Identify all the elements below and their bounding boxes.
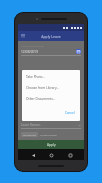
button[interactable]: Recent apps	[66, 151, 74, 159]
staticText: Leave Reason	[21, 123, 41, 127]
staticText: Apply	[47, 143, 56, 147]
button[interactable]: Pick date	[76, 49, 81, 54]
staticText: Take Photo...	[26, 75, 46, 79]
button[interactable]: Menu	[20, 33, 26, 39]
button[interactable]: Choose from Library...	[26, 86, 76, 90]
staticText: Other Documents...	[26, 97, 56, 101]
staticText: Cancel	[65, 111, 75, 115]
button[interactable]: Back	[29, 151, 37, 159]
staticText: From (dd/mm/yyyy)	[21, 44, 44, 47]
button[interactable]: Home	[47, 151, 55, 159]
button[interactable]: Choose file	[21, 132, 38, 137]
button[interactable]: Take Photo...	[26, 75, 76, 79]
button[interactable]: Apply	[18, 140, 84, 149]
button[interactable]: Cancel	[64, 110, 76, 116]
staticText: 12/08/2019	[21, 50, 38, 54]
staticText: Apply Leave	[41, 34, 61, 39]
button[interactable]: Other Documents...	[26, 97, 76, 101]
staticText: No file chosen	[40, 133, 57, 136]
staticText: Choose file	[23, 133, 36, 136]
staticText: Choose from Library...	[26, 86, 59, 90]
button[interactable]: Leave Reason	[21, 123, 81, 127]
